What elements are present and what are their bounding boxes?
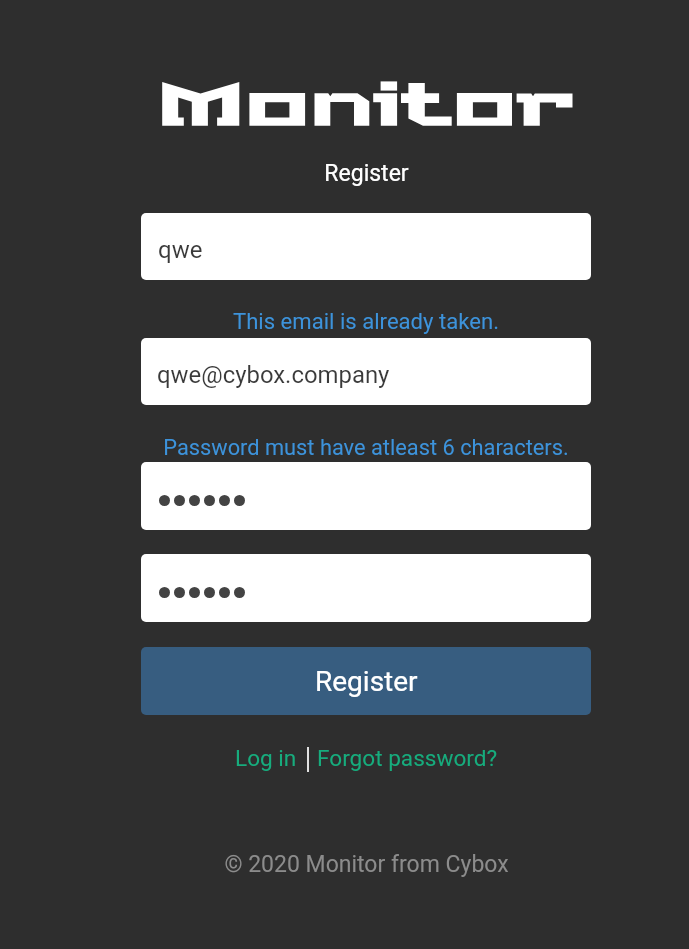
staticText: Register (315, 665, 418, 698)
button[interactable]: Username (141, 213, 591, 280)
button[interactable]: Email (141, 338, 591, 405)
button[interactable]: Confirm password (141, 554, 591, 622)
staticText: qwe (158, 236, 203, 264)
staticText: This email is already taken. (233, 308, 499, 334)
staticText: Password must have atleast 6 characters. (163, 435, 569, 461)
staticText: Register (324, 160, 409, 187)
button[interactable]: Forgot password? (317, 745, 498, 771)
staticText: © 2020 Monitor from Cybox (224, 851, 509, 878)
button[interactable]: Register (141, 647, 591, 715)
staticText: Log in (235, 745, 297, 771)
staticText: qwe@cybox.company (157, 361, 390, 389)
staticText: Forgot password? (317, 745, 498, 771)
button[interactable]: Log in (235, 745, 297, 771)
button[interactable]: Password (141, 462, 591, 530)
